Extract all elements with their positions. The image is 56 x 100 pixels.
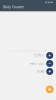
- button[interactable]: Add counter: [45, 84, 55, 94]
- button[interactable]: Snacks: [4, 67, 53, 75]
- staticText: Daily Counter: [3, 5, 24, 9]
- button[interactable]: Coffee: [4, 51, 53, 59]
- button[interactable]: Water cups: [4, 59, 53, 67]
- staticText: Coffee: [34, 54, 44, 57]
- staticText: Water cups: [30, 62, 44, 65]
- staticText: Snacks: [37, 70, 44, 73]
